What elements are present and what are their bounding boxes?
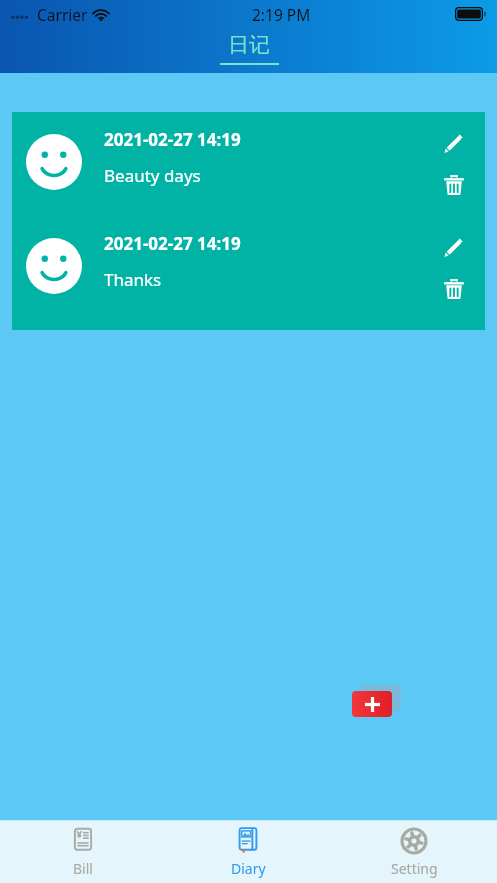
button[interactable]: Edit entry [437,126,471,160]
staticText: 2021-02-27 14:19 [104,232,241,255]
button[interactable]: 2021-02-27 14:19 [12,202,485,306]
staticText: Beauty days [104,164,201,187]
staticText: Diary [231,859,266,878]
staticText: 2021-02-27 14:19 [104,128,241,151]
button[interactable]: Delete entry [437,272,471,306]
button[interactable]: Setting [331,821,497,883]
button[interactable]: 日记 [218,31,280,59]
button[interactable]: Add diary entry [352,685,401,718]
staticText: Setting [391,859,438,878]
button[interactable]: Bill [0,821,165,883]
staticText: 2:19 PM [252,4,311,25]
button[interactable]: Diary [165,821,331,883]
button[interactable]: 2021-02-27 14:19 [12,112,485,202]
staticText: Thanks [104,268,162,291]
button[interactable]: Edit entry [437,230,471,264]
staticText: Carrier [37,4,88,25]
staticText: Bill [73,859,93,878]
staticText: 日记 [228,32,270,58]
button[interactable]: Delete entry [437,168,471,202]
